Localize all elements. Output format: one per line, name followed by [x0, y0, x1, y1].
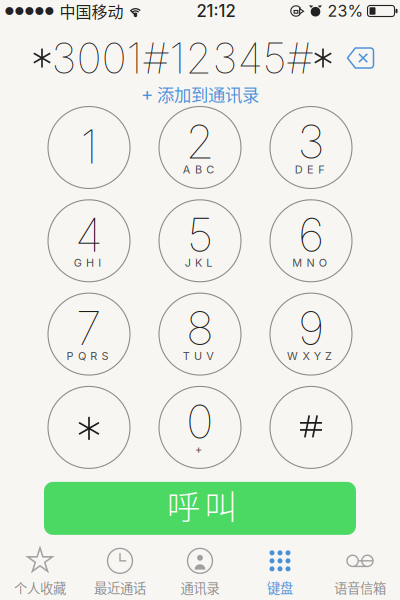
staticText: 9	[298, 300, 324, 356]
staticText: DEF	[295, 163, 332, 176]
staticText: 键盘	[267, 578, 293, 597]
staticText: WXYZ	[287, 349, 339, 363]
button[interactable]: 呼叫	[44, 482, 356, 535]
staticText: 3	[297, 113, 324, 170]
button[interactable]: 语音信箱	[320, 547, 400, 600]
button[interactable]: 0	[158, 386, 241, 469]
staticText: +	[195, 443, 209, 456]
staticText: MNO	[292, 256, 334, 269]
staticText: 最近通话	[94, 578, 146, 597]
staticText: 7	[76, 300, 102, 356]
staticText: 中国移动	[59, 0, 123, 23]
staticText: JKL	[185, 256, 220, 269]
staticText: 个人收藏	[14, 578, 66, 597]
staticText: 4	[75, 207, 103, 263]
button[interactable]: +	[141, 84, 259, 104]
button[interactable]: 通讯录	[160, 547, 240, 600]
button[interactable]: 7	[47, 293, 130, 376]
button[interactable]: 最近通话	[80, 547, 160, 600]
staticText: ●●●●●	[4, 4, 54, 17]
staticText: 语音信箱	[334, 578, 386, 597]
staticText: 1	[80, 118, 97, 175]
button[interactable]: 2	[158, 106, 241, 189]
button[interactable]: 5	[158, 199, 241, 282]
staticText: 0	[186, 393, 214, 450]
button[interactable]: 个人收藏	[0, 547, 80, 600]
button[interactable]: 9	[269, 293, 352, 376]
button[interactable]: 键盘	[240, 547, 320, 600]
staticText: 21:12	[196, 1, 235, 21]
staticText: 5	[187, 207, 213, 263]
button[interactable]: Delete	[340, 39, 380, 77]
staticText: 23%	[327, 1, 363, 21]
button[interactable]	[47, 386, 130, 469]
staticText: ABC	[183, 163, 222, 176]
staticText: PQRS	[67, 349, 116, 363]
staticText: TUV	[183, 349, 222, 363]
staticText: 2	[185, 113, 214, 170]
staticText: 添加到通讯录	[157, 81, 259, 107]
staticText: 8	[186, 300, 214, 356]
staticText: +	[141, 83, 153, 105]
button[interactable]: 1	[47, 106, 130, 189]
button[interactable]: 3	[269, 106, 352, 189]
button[interactable]: 8	[158, 293, 241, 376]
button[interactable]: 4	[47, 199, 130, 282]
staticText: GHI	[74, 256, 109, 269]
staticText: 6	[298, 207, 324, 263]
staticText: 呼叫	[167, 480, 237, 529]
button[interactable]	[269, 386, 352, 469]
staticText: 通讯录	[180, 578, 219, 597]
button[interactable]: 6	[269, 199, 352, 282]
staticText: 3001#12345#	[51, 32, 313, 84]
